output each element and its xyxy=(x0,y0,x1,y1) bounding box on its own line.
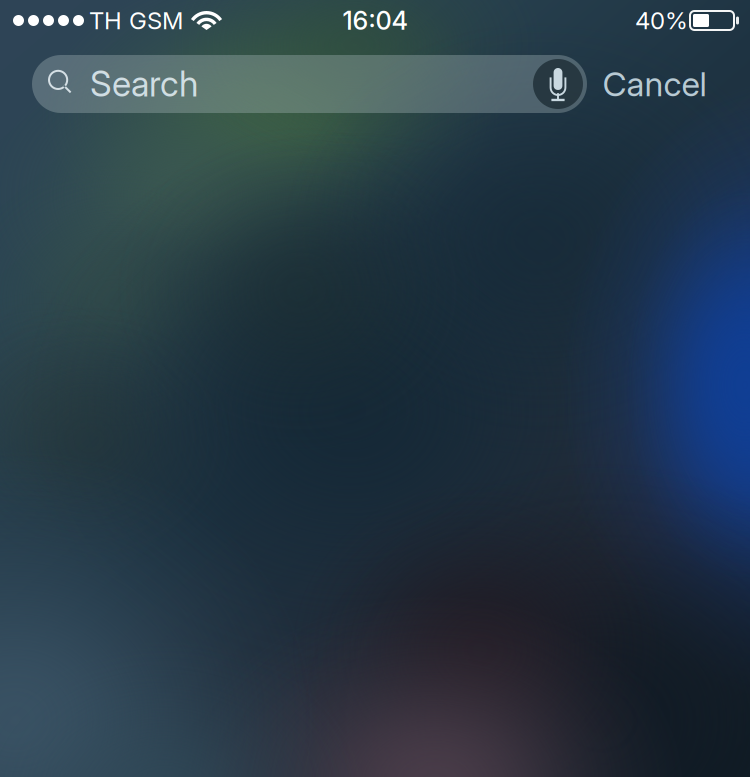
button[interactable]: Search xyxy=(32,55,587,113)
staticText: 16:04 xyxy=(342,5,407,36)
staticText: 40% xyxy=(635,6,688,35)
button[interactable]: Cancel xyxy=(587,55,722,113)
staticText: Search xyxy=(90,63,198,105)
staticText: Cancel xyxy=(602,64,706,104)
staticText: TH GSM xyxy=(89,6,183,35)
